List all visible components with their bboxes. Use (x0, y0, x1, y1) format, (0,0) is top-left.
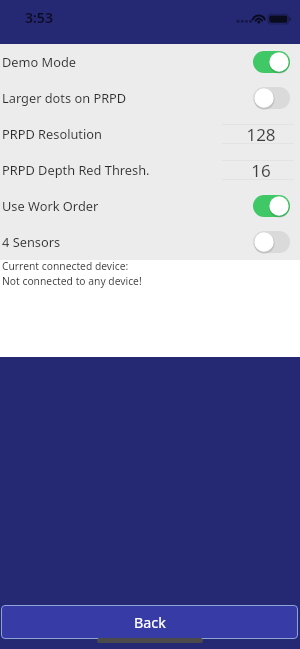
button[interactable]: 128 (222, 124, 294, 144)
button[interactable]: Use Work Order (0, 188, 300, 224)
staticText: Use Work Order (2, 197, 99, 214)
staticText: Current connected device: (2, 259, 129, 273)
staticText: Larger dots on PRPD (2, 89, 127, 106)
button[interactable]: Switch on (253, 195, 290, 217)
button[interactable]: PRPD Depth Red Thresh. (0, 152, 300, 188)
staticText: Demo Mode (2, 53, 77, 70)
button[interactable]: Switch off (253, 87, 290, 109)
staticText: PRPD Resolution (2, 125, 102, 142)
staticText: Back (134, 613, 166, 632)
button[interactable]: Back (1, 605, 298, 639)
button[interactable]: 4 Sensors (0, 224, 300, 260)
button[interactable]: PRPD Resolution (0, 116, 300, 152)
staticText: PRPD Depth Red Thresh. (2, 161, 150, 178)
button[interactable]: Demo Mode (0, 44, 300, 80)
staticText: 128 (246, 123, 276, 143)
staticText: 4 Sensors (2, 233, 61, 250)
button[interactable]: Switch on (253, 51, 290, 73)
button[interactable]: Switch off (253, 231, 290, 253)
button[interactable]: Larger dots on PRPD (0, 80, 300, 116)
staticText: 16 (251, 159, 271, 179)
staticText: Not connected to any device! (2, 274, 142, 288)
button[interactable]: 16 (222, 160, 294, 180)
staticText: 3:53 (25, 8, 53, 27)
